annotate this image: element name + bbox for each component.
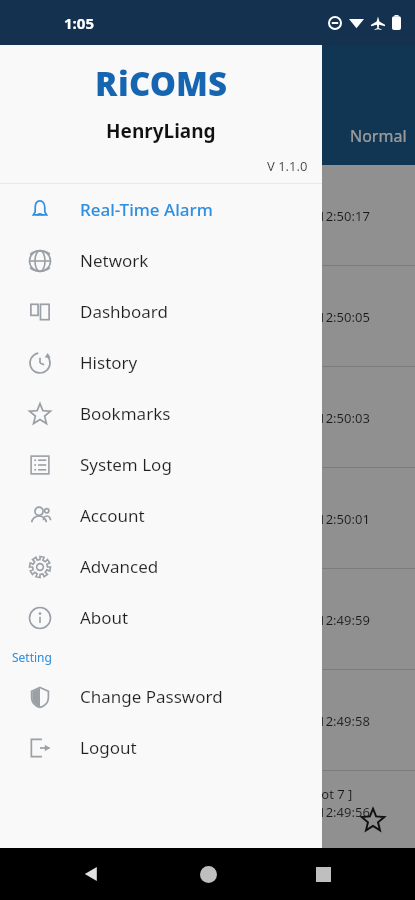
staticText: 03 12:49:59 [300,611,370,629]
button[interactable]: Change Password [0,671,322,722]
button[interactable]: About [0,592,322,643]
staticText: HenryLiang [106,118,216,144]
staticText: Normal [350,125,407,147]
staticText: 03 12:49:56 [300,803,370,821]
staticText: Advanced [80,555,159,578]
staticText: Change Password [80,685,223,708]
staticText: 03 12:49:58 [300,712,370,730]
staticText: System Log [80,453,172,476]
button[interactable]: Recent apps [299,850,347,898]
staticText: Logout [80,736,137,759]
button[interactable]: Bookmarks [0,388,322,439]
staticText: lot 7 ] [318,785,353,803]
staticText: 1:05 [64,13,94,33]
staticText: About [80,606,129,629]
button[interactable]: Home [184,850,232,898]
button[interactable]: Back [68,850,116,898]
staticText: Account [80,504,145,527]
button[interactable]: Real-Time Alarm [0,184,322,235]
button[interactable]: Account [0,490,322,541]
button[interactable]: Dashboard [0,286,322,337]
button[interactable]: Bookmark [355,802,391,838]
staticText: 03 12:50:03 [300,409,370,427]
staticText: Real-Time Alarm [80,198,213,221]
button[interactable]: History [0,337,322,388]
staticText: Network [80,249,149,272]
button[interactable]: Advanced [0,541,322,592]
staticText: Bookmarks [80,402,171,425]
staticText: 03 12:50:05 [300,308,370,326]
staticText: 03 12:50:17 [300,207,370,225]
staticText: History [80,351,138,374]
staticText: 03 12:50:01 [300,510,370,528]
button[interactable]: Network [0,235,322,286]
staticText: V 1.1.0 [267,157,308,175]
staticText: Setting [12,649,52,665]
staticText: COMS [129,61,228,106]
staticText: Dashboard [80,300,169,323]
staticText: R [95,61,118,106]
staticText: i [118,61,129,106]
button[interactable]: Logout [0,722,322,773]
button[interactable]: System Log [0,439,322,490]
